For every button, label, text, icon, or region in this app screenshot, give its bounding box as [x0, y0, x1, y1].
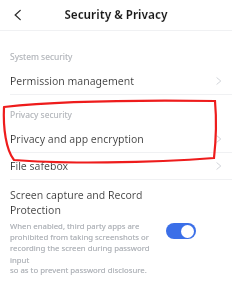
button[interactable]: Screen capture and Record	[0, 180, 232, 281]
staticText: Screen capture and Record	[10, 188, 143, 202]
button[interactable]: Privacy and app encryption	[0, 126, 232, 152]
staticText: Protection	[10, 203, 61, 217]
staticText: When enabled, third party apps are	[10, 221, 140, 232]
button[interactable]: Screen capture and Record Protection tog…	[166, 223, 196, 239]
button[interactable]: File safebox	[0, 153, 232, 179]
staticText: System security	[10, 51, 73, 63]
staticText: Permission management	[10, 74, 134, 88]
staticText: Privacy security	[10, 109, 72, 121]
staticText: prohibited from taking screenshots or	[10, 232, 149, 243]
staticText: recording the screen during password inp…	[10, 243, 162, 265]
staticText: Security & Privacy	[64, 7, 168, 23]
staticText: File safebox	[10, 159, 69, 173]
button[interactable]: Permission management	[0, 68, 232, 94]
staticText: Privacy and app encryption	[10, 132, 144, 146]
staticText: so as to prevent password disclosure.	[10, 265, 147, 275]
button[interactable]: Back	[6, 3, 30, 27]
